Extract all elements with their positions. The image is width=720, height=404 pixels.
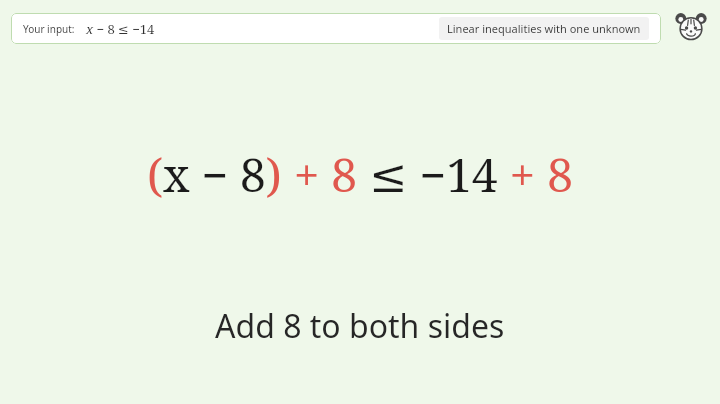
button[interactable]: Linear inequalities with one unknown xyxy=(439,17,649,40)
staticText: Linear inequalities with one unknown xyxy=(447,21,641,36)
button[interactable]: Your input: xyxy=(11,13,661,44)
staticText: x − 8 ≤ −14 xyxy=(86,20,155,38)
staticText: (x − 8) + 8 ≤ −14 + 8 xyxy=(147,143,573,206)
staticText: Your input: xyxy=(23,22,75,36)
button[interactable]: App logo xyxy=(672,9,710,47)
staticText: Add 8 to both sides xyxy=(215,304,505,348)
